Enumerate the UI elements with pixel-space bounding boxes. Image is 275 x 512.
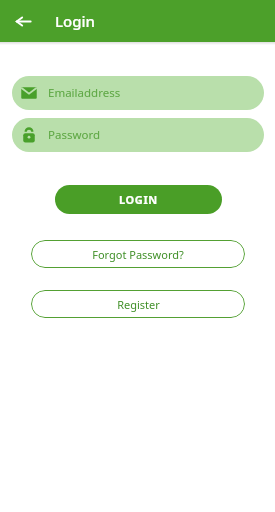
staticText: Register <box>117 297 160 312</box>
staticText: Forgot Password? <box>92 247 184 262</box>
staticText: LOGIN <box>119 192 158 207</box>
button[interactable]: LOGIN <box>55 185 222 214</box>
staticText: Emailaddress <box>48 85 121 101</box>
button[interactable]: Emailaddress <box>12 76 264 110</box>
staticText: Login <box>55 11 95 31</box>
button[interactable]: Register <box>31 290 245 318</box>
button[interactable]: Back <box>10 8 36 34</box>
staticText: Password <box>48 127 101 143</box>
button[interactable]: Password <box>12 118 264 152</box>
button[interactable]: Forgot Password? <box>31 240 245 268</box>
